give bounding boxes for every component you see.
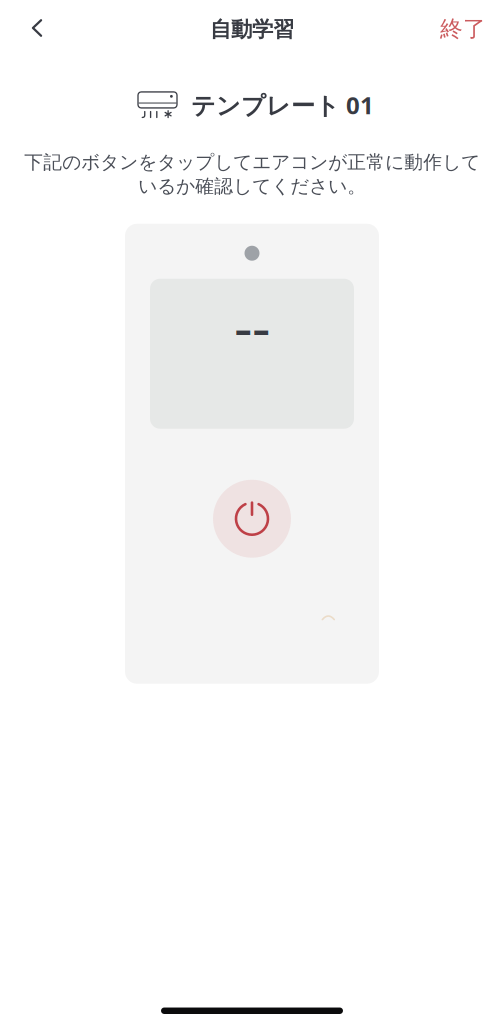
staticText: 終了 [440, 15, 486, 43]
button[interactable]: 電源 [213, 480, 291, 558]
button[interactable]: 戻る [15, 6, 59, 50]
staticText: テンプレート 01 [191, 89, 374, 121]
staticText: 自動学習 [210, 16, 294, 43]
button[interactable]: 終了 [432, 6, 494, 50]
staticText: -- [234, 288, 270, 364]
staticText: 下記のボタンをタップしてエアコンが正常に動作して いるか確認してください。 [24, 151, 480, 198]
